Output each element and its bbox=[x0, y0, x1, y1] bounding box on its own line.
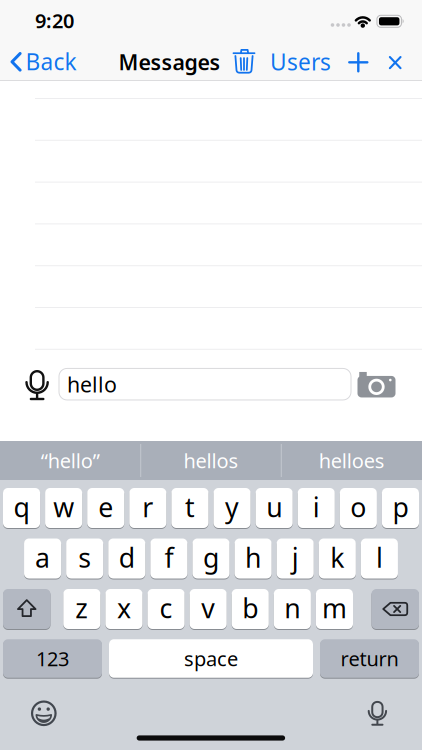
staticText: j bbox=[292, 540, 299, 575]
staticText: helloes bbox=[319, 447, 385, 474]
button[interactable]: Delete bbox=[371, 589, 419, 629]
button[interactable]: d bbox=[108, 538, 145, 578]
button[interactable]: l bbox=[361, 538, 398, 578]
button[interactable]: z bbox=[63, 589, 100, 629]
button[interactable]: Emoji bbox=[30, 699, 58, 727]
staticText: Messages bbox=[118, 48, 220, 76]
staticText: u bbox=[266, 489, 282, 525]
button[interactable]: Users bbox=[263, 42, 337, 82]
staticText: y bbox=[225, 489, 239, 525]
button[interactable]: r bbox=[129, 488, 166, 528]
button[interactable]: x bbox=[105, 589, 142, 629]
button[interactable]: p bbox=[382, 488, 419, 528]
button[interactable]: s bbox=[66, 538, 103, 578]
staticText: q bbox=[14, 489, 30, 525]
button[interactable]: a bbox=[24, 538, 61, 578]
button[interactable]: j bbox=[277, 538, 314, 578]
button[interactable]: space bbox=[109, 639, 313, 678]
button[interactable]: hellos bbox=[141, 441, 280, 480]
staticText: return bbox=[340, 645, 398, 672]
button[interactable]: w bbox=[45, 488, 82, 528]
button[interactable]: Shift bbox=[3, 589, 50, 629]
button[interactable]: “hello” bbox=[1, 441, 140, 480]
staticText: k bbox=[330, 540, 344, 575]
button[interactable]: y bbox=[213, 488, 251, 528]
staticText: hello bbox=[67, 370, 117, 398]
button[interactable]: 123 bbox=[3, 639, 102, 678]
staticText: h bbox=[245, 540, 261, 575]
button[interactable]: Back bbox=[0, 40, 80, 84]
button[interactable]: o bbox=[340, 488, 377, 528]
button[interactable]: helloes bbox=[282, 441, 421, 480]
staticText: m bbox=[322, 590, 347, 626]
button[interactable]: g bbox=[192, 538, 229, 578]
staticText: z bbox=[75, 590, 88, 626]
button[interactable]: q bbox=[3, 488, 40, 528]
staticText: hellos bbox=[183, 447, 238, 474]
staticText: o bbox=[350, 489, 366, 525]
staticText: t bbox=[185, 489, 195, 525]
staticText: b bbox=[242, 590, 258, 626]
staticText: 9:20 bbox=[35, 7, 74, 34]
button[interactable]: Add bbox=[349, 53, 368, 72]
staticText: e bbox=[98, 489, 113, 525]
staticText: Users bbox=[270, 47, 331, 77]
button[interactable]: b bbox=[232, 589, 269, 629]
staticText: Back bbox=[25, 46, 76, 76]
button[interactable]: hello bbox=[59, 368, 351, 400]
button[interactable]: n bbox=[274, 589, 311, 629]
staticText: w bbox=[53, 489, 74, 525]
staticText: s bbox=[78, 540, 91, 575]
button[interactable]: h bbox=[234, 538, 272, 578]
staticText: x bbox=[117, 590, 131, 626]
staticText: p bbox=[392, 489, 408, 525]
staticText: space bbox=[184, 645, 238, 672]
staticText: f bbox=[164, 540, 173, 575]
button[interactable]: m bbox=[316, 589, 353, 629]
button[interactable]: return bbox=[320, 639, 419, 678]
button[interactable]: i bbox=[298, 488, 335, 528]
button[interactable]: Dictation bbox=[367, 700, 387, 725]
staticText: 123 bbox=[36, 645, 69, 672]
staticText: d bbox=[119, 540, 135, 575]
staticText: r bbox=[142, 489, 153, 525]
button[interactable]: Camera bbox=[357, 372, 395, 397]
staticText: i bbox=[313, 489, 320, 525]
staticText: l bbox=[376, 540, 383, 575]
button[interactable]: Close bbox=[389, 56, 401, 69]
button[interactable]: v bbox=[190, 589, 227, 629]
staticText: n bbox=[284, 590, 300, 626]
button[interactable]: k bbox=[319, 538, 356, 578]
button[interactable]: e bbox=[87, 488, 124, 528]
button[interactable]: c bbox=[147, 589, 185, 629]
button[interactable]: Delete All bbox=[229, 44, 259, 80]
staticText: g bbox=[203, 540, 219, 575]
button[interactable]: Dictate bbox=[25, 369, 49, 399]
button[interactable]: f bbox=[150, 538, 187, 578]
button[interactable]: t bbox=[171, 488, 208, 528]
staticText: “hello” bbox=[41, 447, 100, 474]
staticText: v bbox=[201, 590, 215, 626]
staticText: c bbox=[160, 590, 173, 626]
button[interactable]: u bbox=[256, 488, 293, 528]
staticText: a bbox=[35, 540, 50, 575]
